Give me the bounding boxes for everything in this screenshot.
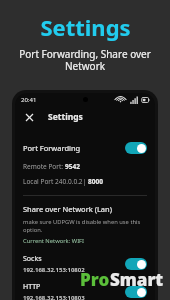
staticText: Smart [110,268,164,291]
button[interactable]: Socks [15,254,155,274]
staticText: Settings [48,111,83,123]
staticText: 9542 [65,162,80,171]
button[interactable]: Toggle [125,286,147,298]
staticText: Local Port 240.0.0.2| [23,177,88,186]
button[interactable]: Toggle [125,258,147,270]
staticText: Remote Port: [23,162,65,171]
staticText: Current Network: WIFI [23,237,85,245]
staticText: Pro [80,268,110,291]
staticText: 20:41 [21,96,37,104]
staticText: 192.168.32.153:10802 [23,266,85,274]
button[interactable]: Toggle [125,142,147,154]
staticText: Socks [23,254,42,264]
staticText: Port Forwarding [23,143,125,153]
staticText: 192.168.32.153:10803 [23,294,85,300]
staticText: Port Forwarding, Share over Network [15,47,155,73]
button[interactable]: Port Forwarding [15,140,155,156]
staticText: Share over Network (Lan) [23,204,112,214]
button[interactable]: Close [22,110,36,124]
staticText: 8000 [88,177,103,186]
staticText: Settings [40,12,131,42]
button[interactable]: HTTP [15,282,155,300]
staticText: HTTP [23,282,41,292]
staticText: make sure UDPGW is disable when use this… [23,218,147,234]
